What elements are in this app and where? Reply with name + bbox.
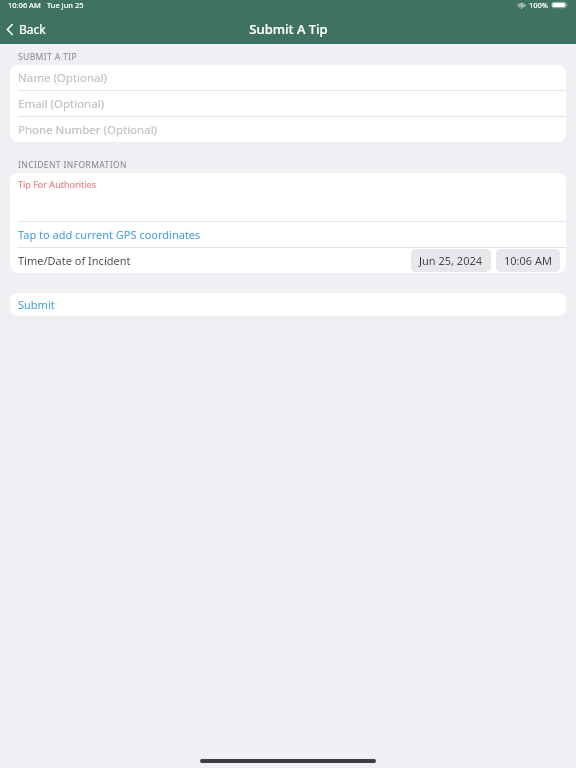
- button[interactable]: Back: [0, 17, 56, 41]
- staticText: Submit A Tip: [249, 20, 328, 38]
- staticText: SUBMIT A TIP: [18, 51, 78, 61]
- staticText: INCIDENT INFORMATION: [18, 159, 127, 169]
- staticText: 100%: [529, 0, 549, 10]
- button[interactable]: Email (Optional): [10, 91, 566, 116]
- button[interactable]: Tip For Authorities: [10, 173, 566, 221]
- button[interactable]: Tap to add current GPS coordinates: [10, 222, 566, 247]
- button[interactable]: Jun 25, 2024: [411, 249, 491, 272]
- staticText: Tue Jun 25: [47, 0, 84, 10]
- button[interactable]: Name (Optional): [10, 65, 566, 90]
- staticText: 10:06 AM: [8, 0, 41, 10]
- staticText: Name (Optional): [18, 70, 107, 86]
- staticText: Time/Date of Incident: [18, 253, 131, 268]
- staticText: Phone Number (Optional): [18, 122, 158, 138]
- button[interactable]: Phone Number (Optional): [10, 117, 566, 142]
- button[interactable]: 10:06 AM: [496, 249, 560, 272]
- staticText: Jun 25, 2024: [419, 253, 483, 268]
- staticText: Tap to add current GPS coordinates: [18, 227, 201, 242]
- button[interactable]: Submit: [10, 293, 566, 316]
- staticText: Email (Optional): [18, 96, 105, 112]
- staticText: Submit: [18, 297, 55, 312]
- staticText: Tip For Authorities: [18, 178, 96, 190]
- staticText: Back: [19, 21, 46, 37]
- other: Back: [6, 23, 14, 36]
- staticText: 10:06 AM: [504, 253, 552, 268]
